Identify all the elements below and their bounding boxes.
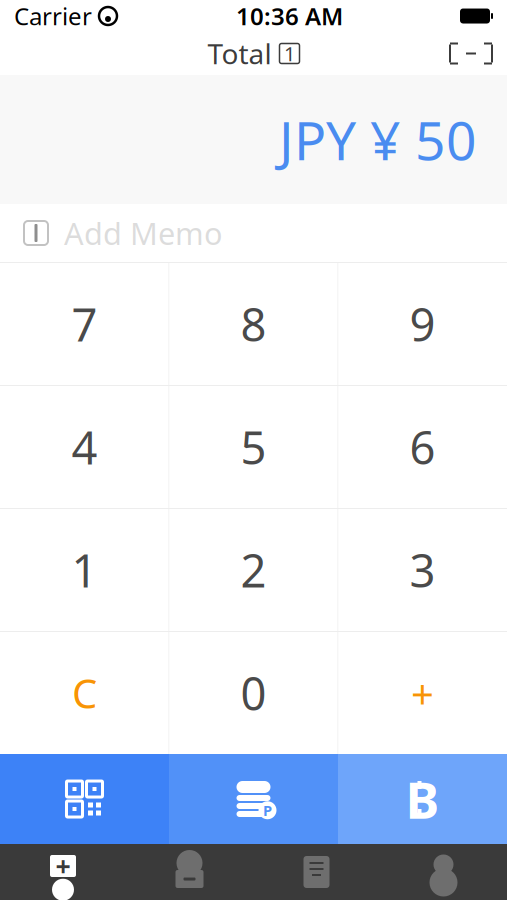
staticText: Total — [207, 35, 271, 72]
button[interactable]: 9 — [338, 263, 506, 385]
button[interactable]: 6 — [338, 386, 506, 508]
staticText: 0 — [240, 663, 266, 723]
staticText: 6 — [409, 417, 435, 477]
button[interactable]: Home — [126, 844, 253, 900]
button[interactable]: 5 — [169, 386, 337, 508]
staticText: B — [405, 765, 439, 833]
staticText: 4 — [71, 417, 97, 477]
staticText: Carrier — [14, 0, 92, 32]
button[interactable]: 1 — [0, 509, 168, 631]
button[interactable]: 4 — [0, 386, 168, 508]
button[interactable]: History — [253, 844, 380, 900]
staticText: 5 — [240, 417, 266, 477]
staticText: 1 — [71, 540, 97, 600]
button[interactable]: Bitcoin — [338, 754, 507, 844]
button[interactable]: 7 — [0, 263, 168, 385]
button[interactable]: 2 — [169, 509, 337, 631]
button[interactable]: + — [338, 632, 506, 754]
staticText: + — [411, 666, 434, 719]
staticText: 3 — [409, 540, 435, 600]
staticText: 2 — [240, 540, 266, 600]
staticText: 7 — [71, 294, 97, 354]
button[interactable]: C — [0, 632, 168, 754]
button[interactable]: Collapse — [447, 32, 495, 75]
button[interactable]: Account — [380, 844, 507, 900]
staticText: Add Memo — [64, 213, 223, 253]
staticText: + — [55, 848, 70, 884]
button[interactable]: 3 — [338, 509, 506, 631]
staticText: JPY ¥ 50 — [279, 104, 477, 175]
staticText: 10:36 AM — [236, 0, 343, 32]
staticText: 1 — [284, 40, 295, 67]
staticText: C — [72, 666, 97, 719]
button[interactable]: Receive — [0, 844, 126, 900]
button[interactable]: Points — [169, 754, 338, 844]
button[interactable]: Add Memo — [0, 204, 507, 262]
button[interactable]: 0 — [169, 632, 337, 754]
staticText: 8 — [240, 294, 266, 354]
button[interactable]: 8 — [169, 263, 337, 385]
staticText: P — [263, 800, 272, 820]
staticText: 9 — [409, 294, 435, 354]
button[interactable]: Scan QR code — [0, 754, 169, 844]
